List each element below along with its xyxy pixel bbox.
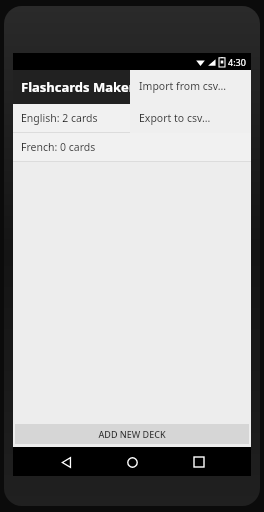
button[interactable]: Home	[118, 448, 146, 476]
button[interactable]: English: 2 cards	[13, 104, 251, 132]
staticText: Export to csv...	[139, 111, 211, 125]
staticText: ADD NEW DECK	[98, 428, 166, 440]
staticText: English: 2 cards	[21, 111, 98, 125]
button[interactable]: Recent apps	[185, 448, 213, 476]
button[interactable]: ADD NEW DECK	[15, 424, 249, 444]
button[interactable]: Import from csv...	[130, 70, 251, 102]
staticText: Import from csv...	[139, 79, 227, 93]
button[interactable]: Export to csv...	[130, 102, 251, 133]
button[interactable]: French: 0 cards	[13, 133, 251, 161]
staticText: 4:30	[228, 56, 246, 68]
button[interactable]: Back	[52, 448, 80, 476]
staticText: French: 0 cards	[21, 140, 96, 154]
staticText: Flashcards Maker	[21, 78, 135, 96]
